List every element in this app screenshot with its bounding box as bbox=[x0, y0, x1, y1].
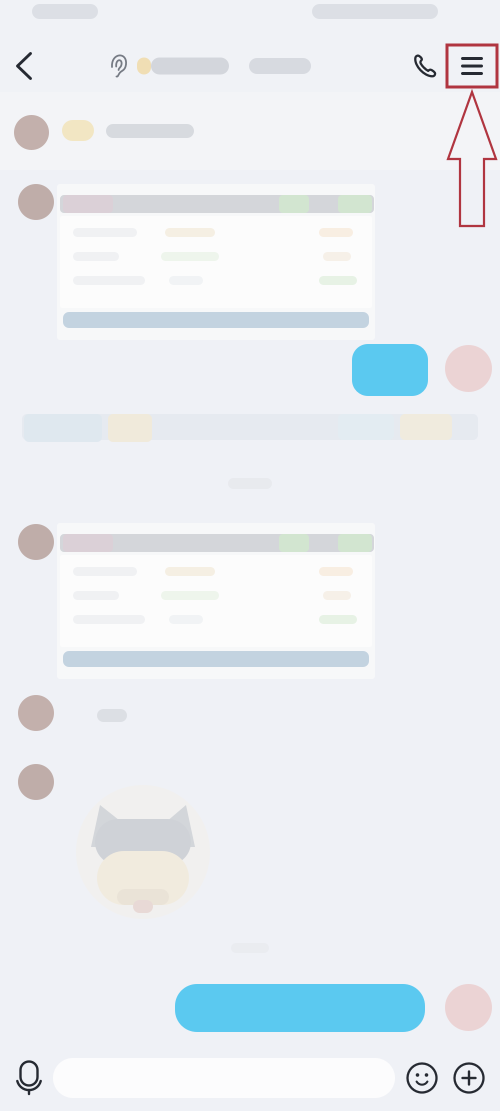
button[interactable]: More bbox=[453, 1057, 485, 1099]
button[interactable]: Menu bbox=[447, 45, 497, 87]
button[interactable]: Voice message bbox=[7, 1057, 51, 1099]
button[interactable]: Emoji bbox=[406, 1057, 438, 1099]
button[interactable]: Back bbox=[0, 39, 48, 93]
button[interactable]: Call bbox=[403, 39, 447, 93]
